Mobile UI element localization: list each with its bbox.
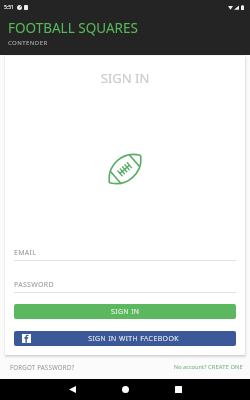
staticText: FORGOT PASSWORD? [10,363,75,371]
button[interactable]: SIGN IN WITH FACEBOOK [14,331,236,346]
staticText: SIGN IN [111,307,140,317]
button[interactable]: PASSWORD [14,280,236,293]
staticText: SIGN IN [14,69,236,87]
staticText: EMAIL [14,248,37,258]
staticText: PASSWORD [14,280,54,290]
button[interactable]: Home [102,379,148,400]
staticText: CONTENDER [8,39,48,47]
button[interactable]: SIGN IN [14,304,236,319]
button[interactable]: EMAIL [14,248,236,261]
button[interactable]: No account? [174,363,243,371]
staticText: FOOTBALL SQUARES [8,19,138,37]
staticText: CREATE ONE [208,363,243,371]
staticText: SIGN IN WITH FACEBOOK [31,334,236,344]
staticText: No account? [174,363,208,371]
button[interactable]: Back [49,379,95,400]
staticText: 5:51 [4,4,14,11]
button[interactable]: Recent apps [155,379,201,400]
button[interactable]: FORGOT PASSWORD? [10,363,75,371]
